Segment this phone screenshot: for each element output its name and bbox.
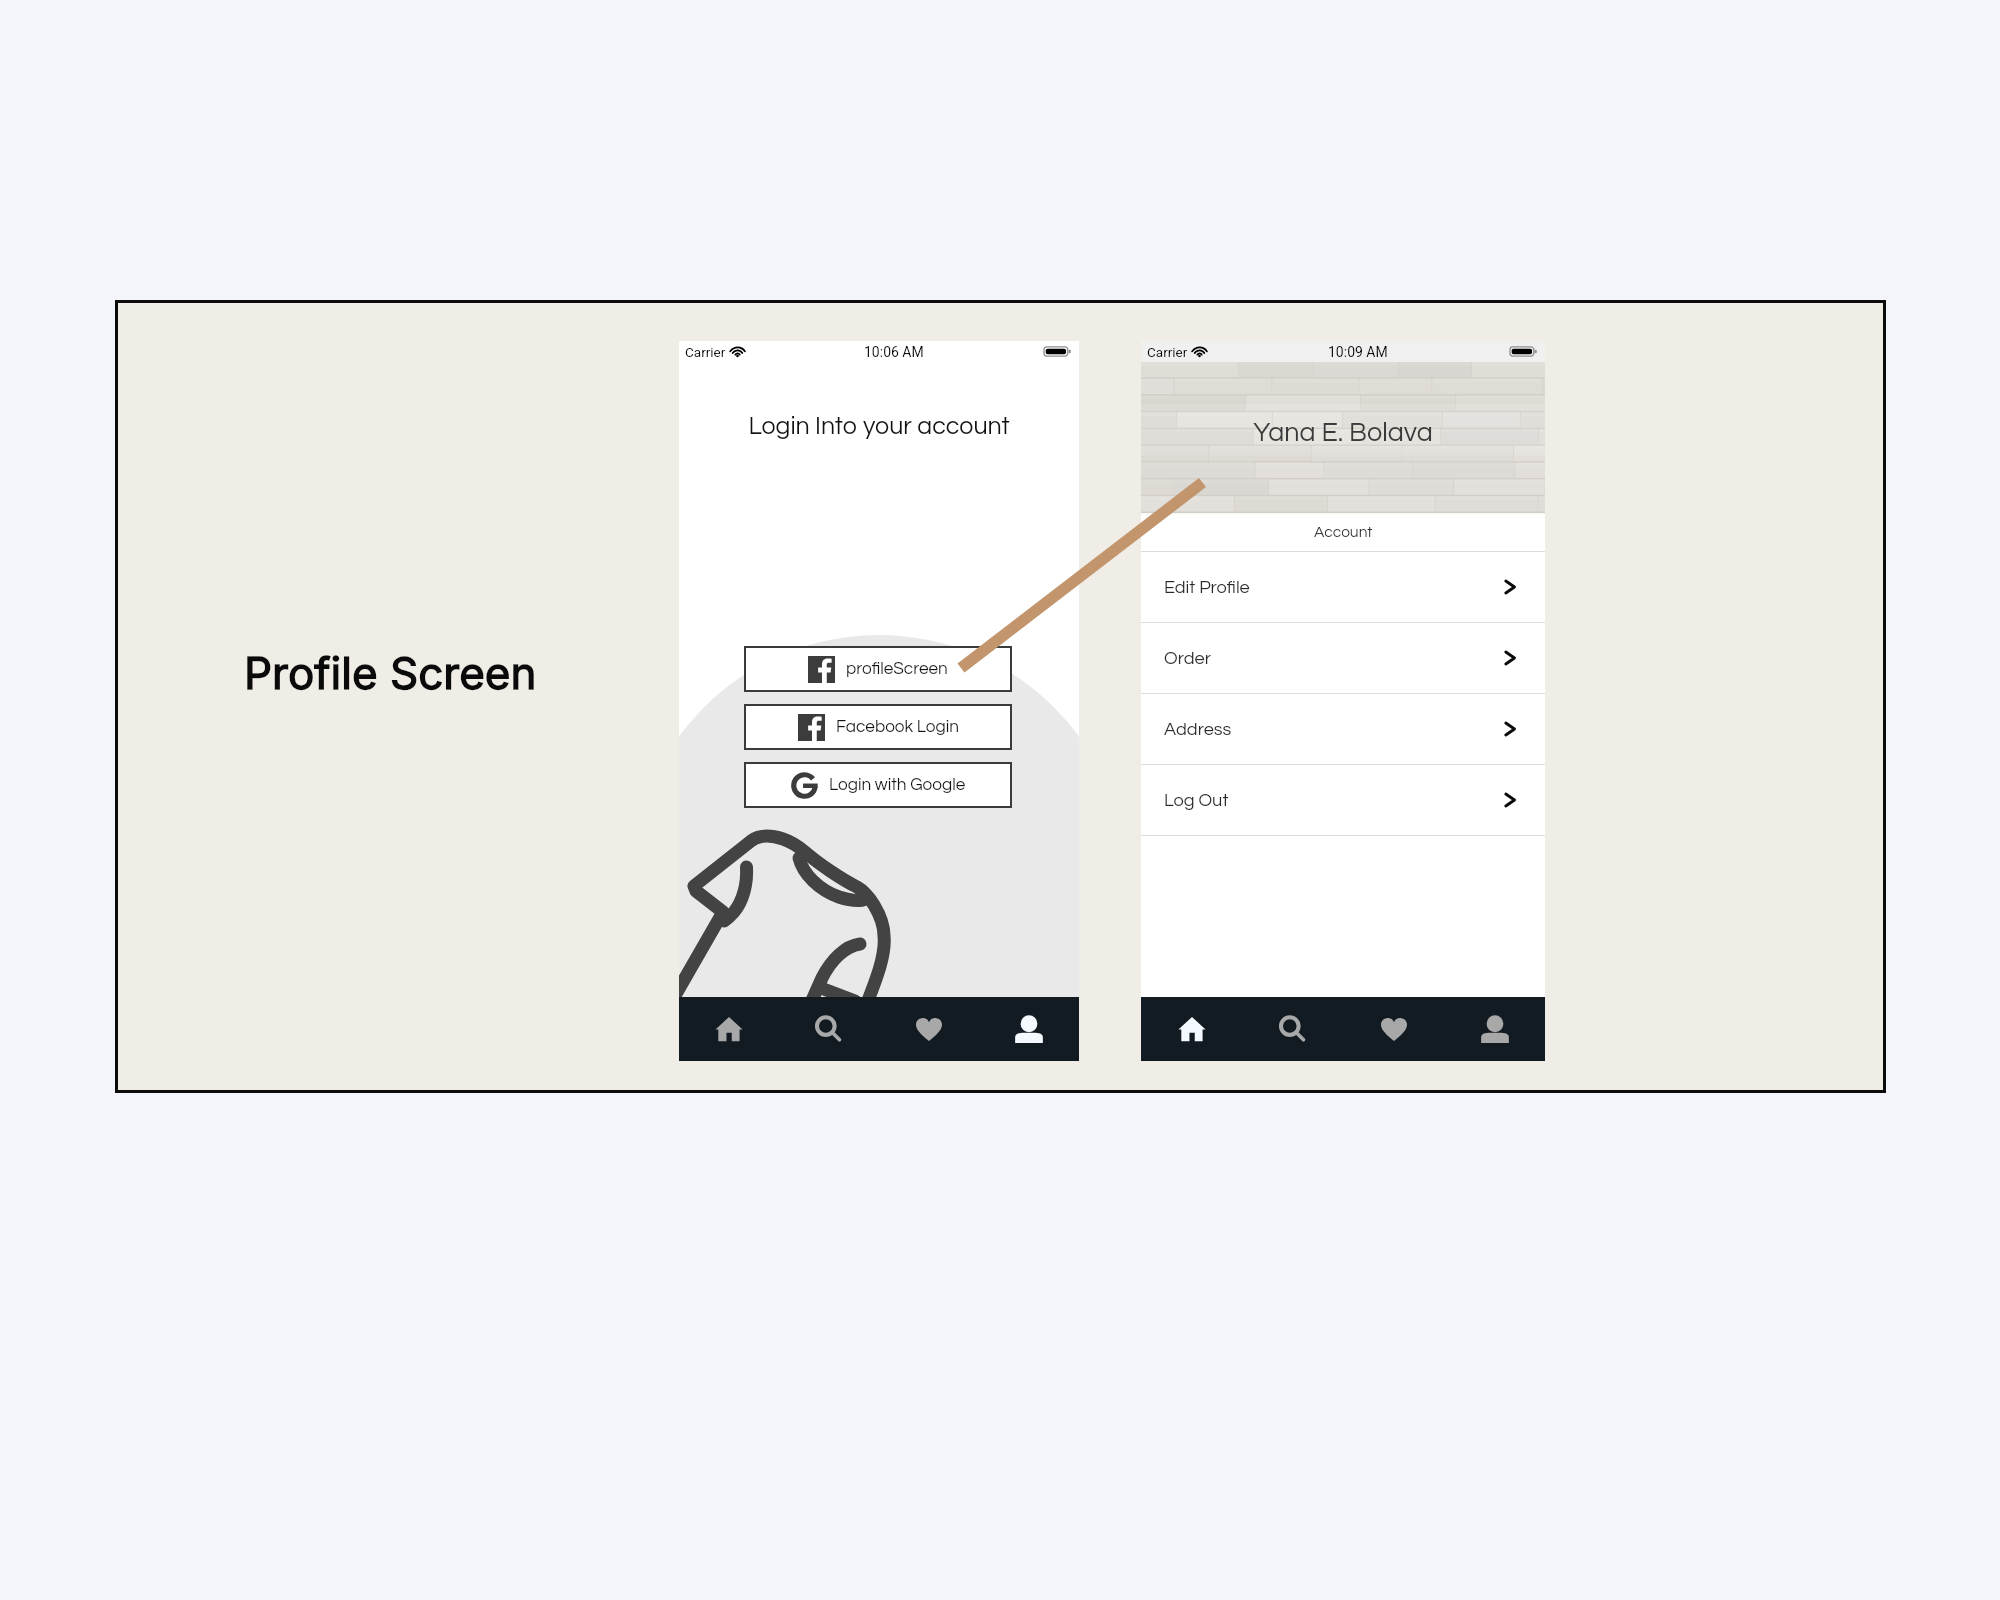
button[interactable]: Order [1141,623,1545,693]
button[interactable]: Login with Google [744,762,1012,808]
staticText: Facebook Login [836,718,959,736]
button[interactable]: Facebook Login [744,704,1012,750]
staticText: Log Out [1164,791,1229,810]
staticText: Address [1164,720,1232,739]
button[interactable]: Home [1141,997,1242,1061]
button[interactable]: Log Out [1141,765,1545,835]
button[interactable]: Edit Profile [1141,552,1545,622]
staticText: Carrier [1147,344,1188,360]
staticText: Yana E. Bolava [1141,419,1545,447]
staticText: 10:06 AM [864,344,924,360]
button[interactable]: Profile [1444,997,1545,1061]
button[interactable]: Home [679,997,779,1061]
button[interactable]: profileScreen [744,646,1012,692]
staticText: Login Into your account [679,413,1079,439]
staticText: Carrier [685,344,726,360]
button[interactable]: Search [1242,997,1343,1061]
staticText: Edit Profile [1164,578,1250,597]
button[interactable]: Address [1141,694,1545,764]
button[interactable]: Favorites [879,997,979,1061]
staticText: profileScreen [846,660,948,678]
staticText: Order [1164,649,1211,668]
button[interactable]: Search [779,997,879,1061]
button[interactable]: Profile [979,997,1079,1061]
staticText: 10:09 AM [1328,344,1388,360]
button[interactable]: Favorites [1343,997,1444,1061]
staticText: Profile Screen [244,646,537,699]
staticText: Login with Google [829,776,966,794]
staticText: Account [1314,524,1373,540]
